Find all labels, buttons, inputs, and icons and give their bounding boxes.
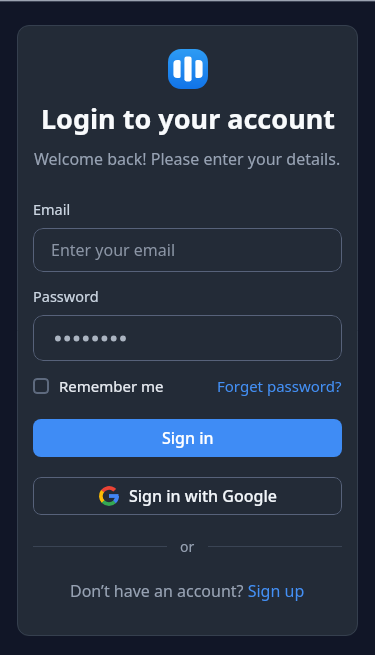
button[interactable] <box>33 315 342 361</box>
staticText: Remember me <box>59 376 164 396</box>
staticText: Login to your account <box>41 100 335 137</box>
staticText: Sign in <box>162 427 214 449</box>
button[interactable]: Remember me <box>33 376 164 396</box>
button[interactable]: Forget password? <box>217 376 342 396</box>
staticText: or <box>180 537 195 555</box>
button[interactable]: Sign in with Google <box>33 477 342 515</box>
button[interactable]: Enter your email <box>33 228 342 272</box>
staticText: Password <box>33 286 99 306</box>
staticText: Sign in with Google <box>129 485 277 507</box>
staticText: Welcome back! Please enter your details. <box>34 148 341 170</box>
staticText: Enter your email <box>51 239 176 261</box>
staticText: Forget password? <box>217 376 342 396</box>
staticText: Don’t have an account? Sign up <box>70 580 305 602</box>
staticText: Email <box>33 199 71 219</box>
button[interactable]: Don’t have an account? Sign up <box>70 580 305 602</box>
button[interactable]: Sign in <box>33 419 342 457</box>
